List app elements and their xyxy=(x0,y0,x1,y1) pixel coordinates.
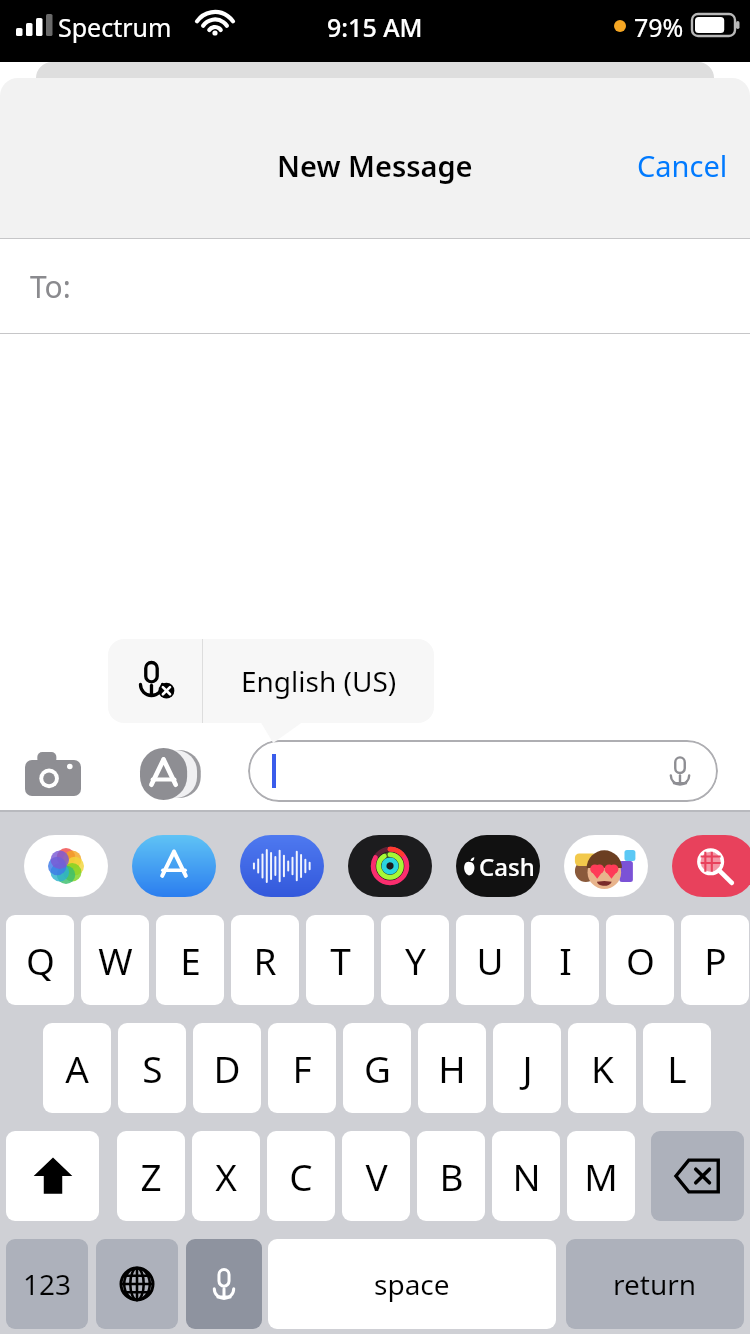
button[interactable]: To: xyxy=(0,239,750,333)
staticText: S xyxy=(142,1043,163,1093)
button[interactable]: F xyxy=(268,1023,336,1113)
button[interactable]: space xyxy=(268,1239,556,1329)
staticText: English (US) xyxy=(241,662,397,700)
button[interactable]: A xyxy=(43,1023,111,1113)
button[interactable]: D xyxy=(193,1023,261,1113)
staticText: Q xyxy=(26,935,55,985)
button[interactable]: L xyxy=(643,1023,711,1113)
button[interactable]: M xyxy=(567,1131,635,1221)
staticText: Spectrum xyxy=(58,10,172,44)
staticText: P xyxy=(704,935,727,985)
button[interactable]: Shift xyxy=(6,1131,99,1221)
staticText: F xyxy=(292,1043,312,1093)
button[interactable]: W xyxy=(81,915,149,1005)
staticText: New Message xyxy=(277,146,473,185)
button[interactable]: J xyxy=(493,1023,561,1113)
button[interactable]: return xyxy=(566,1239,744,1329)
staticText: Cash xyxy=(479,850,535,883)
button[interactable]: Apps xyxy=(140,743,202,805)
button[interactable]: U xyxy=(456,915,524,1005)
staticText: G xyxy=(364,1043,391,1093)
button[interactable]: Apple Cash xyxy=(456,834,540,898)
staticText: K xyxy=(591,1043,614,1093)
button[interactable]: B xyxy=(417,1131,485,1221)
button[interactable]: Dictate xyxy=(248,740,718,802)
button[interactable]: Memoji xyxy=(564,834,648,898)
staticText: Cancel xyxy=(637,146,728,185)
button[interactable]: Audio xyxy=(240,834,324,898)
button[interactable]: T xyxy=(306,915,374,1005)
button[interactable]: Camera xyxy=(22,743,84,805)
staticText: B xyxy=(439,1151,464,1201)
staticText: M xyxy=(584,1151,618,1201)
button[interactable]: Dictate xyxy=(660,751,700,791)
staticText: I xyxy=(559,935,572,985)
staticText: A xyxy=(65,1043,89,1093)
staticText: Y xyxy=(405,935,426,985)
button[interactable]: Y xyxy=(381,915,449,1005)
button[interactable]: 123 xyxy=(6,1239,88,1329)
button[interactable]: K xyxy=(568,1023,636,1113)
staticText: H xyxy=(438,1043,466,1093)
staticText: V xyxy=(365,1151,388,1201)
staticText: U xyxy=(476,935,504,985)
button[interactable]: N xyxy=(492,1131,560,1221)
staticText: L xyxy=(667,1043,687,1093)
staticText: J xyxy=(522,1043,533,1093)
staticText: 123 xyxy=(23,1265,72,1303)
staticText: return xyxy=(613,1265,697,1303)
button[interactable]: Switch keyboard xyxy=(96,1239,178,1329)
button[interactable]: E xyxy=(156,915,224,1005)
button[interactable]: X xyxy=(192,1131,260,1221)
button[interactable]: H xyxy=(418,1023,486,1113)
button[interactable]: Q xyxy=(6,915,74,1005)
staticText: T xyxy=(330,935,351,985)
staticText: space xyxy=(374,1265,450,1303)
button[interactable]: R xyxy=(231,915,299,1005)
staticText: X xyxy=(215,1151,237,1201)
staticText: 79% xyxy=(634,10,684,44)
button[interactable]: S xyxy=(118,1023,186,1113)
button[interactable]: G xyxy=(343,1023,411,1113)
staticText: W xyxy=(98,935,133,985)
button[interactable]: Cancel xyxy=(615,134,750,197)
staticText: O xyxy=(626,935,655,985)
button[interactable]: O xyxy=(606,915,674,1005)
staticText: D xyxy=(213,1043,241,1093)
button[interactable]: Image search xyxy=(672,834,750,898)
button[interactable]: V xyxy=(342,1131,410,1221)
staticText: C xyxy=(289,1151,313,1201)
staticText: To: xyxy=(30,266,71,307)
button[interactable]: Delete xyxy=(651,1131,744,1221)
button[interactable]: Dictation off xyxy=(108,639,202,723)
button[interactable]: P xyxy=(681,915,749,1005)
staticText: 9:15 AM xyxy=(327,10,423,44)
button[interactable]: Photos xyxy=(24,834,108,898)
staticText: E xyxy=(180,935,201,985)
button[interactable]: Dictate xyxy=(186,1239,262,1329)
staticText: N xyxy=(512,1151,541,1201)
button[interactable]: I xyxy=(531,915,599,1005)
staticText: R xyxy=(253,935,277,985)
button[interactable]: C xyxy=(267,1131,335,1221)
staticText: Z xyxy=(140,1151,162,1201)
button[interactable]: App Store xyxy=(132,834,216,898)
button[interactable]: Fitness xyxy=(348,834,432,898)
button[interactable]: English (US) xyxy=(203,639,434,723)
button[interactable]: Z xyxy=(117,1131,185,1221)
